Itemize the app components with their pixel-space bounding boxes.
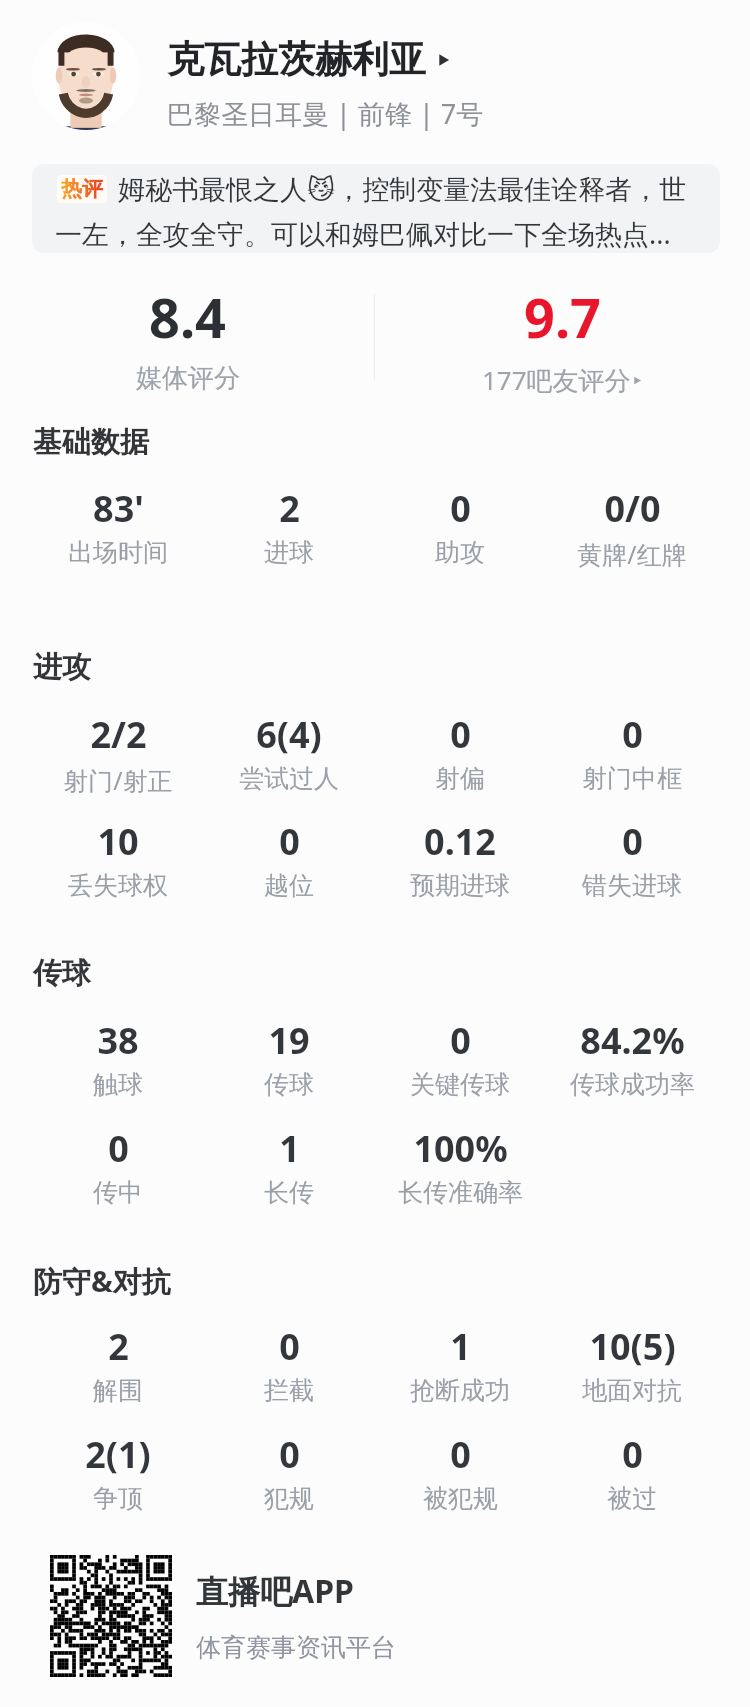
button[interactable]: QR code to download 直播吧 APP: [50, 1555, 372, 1677]
button[interactable]: 6(4): [203, 710, 374, 794]
staticText: 2(1): [85, 1430, 151, 1479]
staticText: 2: [279, 484, 300, 533]
staticText: 长传: [264, 1177, 314, 1208]
staticText: 38: [97, 1016, 139, 1065]
other: QR code to download 直播吧 APP: [50, 1555, 172, 1677]
staticText: 黄牌/红牌: [577, 537, 687, 571]
button[interactable]: 0: [374, 1016, 546, 1100]
staticText: 2/2: [90, 710, 147, 759]
staticText: 0: [622, 817, 643, 866]
button[interactable]: 传球: [33, 955, 91, 992]
staticText: 姆秘书最恨之人😼，控制变量法最佳诠释者，世: [118, 173, 687, 207]
staticText: 10: [97, 817, 139, 866]
button[interactable]: 2: [203, 484, 374, 568]
staticText: 抢断成功: [410, 1375, 510, 1406]
staticText: 丢失球权: [68, 870, 168, 901]
button[interactable]: 0: [546, 1430, 718, 1514]
button[interactable]: 0/0: [546, 484, 718, 571]
staticText: 传球成功率: [570, 1069, 695, 1100]
button[interactable]: 0: [203, 1322, 374, 1406]
staticText: 0: [450, 1430, 471, 1479]
staticText: 克瓦拉茨赫利亚: [167, 36, 426, 83]
staticText: 100%: [413, 1124, 508, 1173]
button[interactable]: 84.2%: [546, 1016, 718, 1100]
staticText: 体育赛事资讯平台: [196, 1632, 396, 1663]
staticText: 射偏: [435, 763, 485, 794]
staticText: 长传准确率: [398, 1177, 523, 1208]
staticText: 2: [108, 1322, 129, 1371]
staticText: 0: [279, 1430, 300, 1479]
staticText: 19: [268, 1016, 310, 1065]
staticText: 被犯规: [423, 1483, 498, 1514]
staticText: 媒体评分: [136, 362, 240, 395]
button[interactable]: 0: [546, 817, 718, 901]
staticText: 84.2%: [580, 1016, 685, 1065]
staticText: 犯规: [264, 1483, 314, 1514]
button[interactable]: 进攻: [33, 649, 91, 686]
button[interactable]: 2/2: [32, 710, 203, 797]
staticText: 关键传球: [410, 1069, 510, 1100]
staticText: 尝试过人: [239, 763, 339, 794]
staticText: 1: [279, 1124, 300, 1173]
button[interactable]: 10(5): [546, 1322, 718, 1406]
staticText: 进球: [264, 537, 314, 568]
staticText: 出场时间: [68, 537, 168, 568]
staticText: 地面对抗: [582, 1375, 682, 1406]
button[interactable]: 0: [203, 817, 374, 901]
button[interactable]: 基础数据: [33, 424, 149, 461]
button[interactable]: 1: [203, 1124, 374, 1208]
button[interactable]: 0.12: [374, 817, 546, 901]
staticText: 热评: [61, 176, 103, 202]
staticText: 0: [279, 817, 300, 866]
button[interactable]: 38: [32, 1016, 203, 1100]
staticText: 传中: [93, 1177, 143, 1208]
button[interactable]: 0: [203, 1430, 374, 1514]
button[interactable]: 100%: [374, 1124, 546, 1208]
button[interactable]: 克瓦拉茨赫利亚: [0, 0, 750, 150]
button[interactable]: 0: [546, 710, 718, 794]
staticText: 助攻: [435, 537, 485, 568]
button[interactable]: 83': [32, 484, 203, 568]
staticText: 巴黎圣日耳曼 | 前锋 | 7号: [167, 95, 484, 132]
button[interactable]: 0: [374, 710, 546, 794]
staticText: 9.7: [524, 280, 601, 354]
button[interactable]: 0: [32, 1124, 203, 1208]
button[interactable]: 2(1): [32, 1430, 203, 1514]
staticText: 10(5): [589, 1322, 676, 1371]
staticText: 一左，全攻全守。可以和姆巴佩对比一下全场热点...: [55, 215, 671, 252]
button[interactable]: 热评: [32, 164, 720, 253]
button[interactable]: 10: [32, 817, 203, 901]
button[interactable]: 2: [32, 1322, 203, 1406]
staticText: 0: [108, 1124, 129, 1173]
staticText: 直播吧APP: [196, 1569, 354, 1613]
staticText: 射门中框: [582, 763, 682, 794]
staticText: 177吧友评分: [482, 362, 631, 398]
staticText: 被过: [607, 1483, 657, 1514]
staticText: 0: [622, 710, 643, 759]
other: See fan ratings: [631, 374, 644, 387]
staticText: 6(4): [256, 710, 322, 759]
staticText: 射门/射正: [63, 763, 173, 797]
button[interactable]: 1: [374, 1322, 546, 1406]
staticText: 0: [622, 1430, 643, 1479]
staticText: 0: [279, 1322, 300, 1371]
staticText: 拦截: [264, 1375, 314, 1406]
button[interactable]: 9.7: [375, 280, 750, 398]
staticText: 0: [450, 484, 471, 533]
button[interactable]: 0: [374, 484, 546, 568]
staticText: 0.12: [424, 817, 496, 866]
staticText: 争顶: [93, 1483, 143, 1514]
other: Open player profile: [435, 51, 453, 69]
button[interactable]: 19: [203, 1016, 374, 1100]
staticText: 0/0: [604, 484, 661, 533]
staticText: 解围: [93, 1375, 143, 1406]
staticText: 传球: [264, 1069, 314, 1100]
staticText: 8.4: [149, 280, 226, 354]
staticText: 1: [450, 1322, 471, 1371]
button[interactable]: 0: [374, 1430, 546, 1514]
button[interactable]: 防守&对抗: [33, 1261, 171, 1301]
button[interactable]: 8.4: [0, 280, 375, 395]
staticText: 0: [450, 710, 471, 759]
staticText: 越位: [264, 870, 314, 901]
